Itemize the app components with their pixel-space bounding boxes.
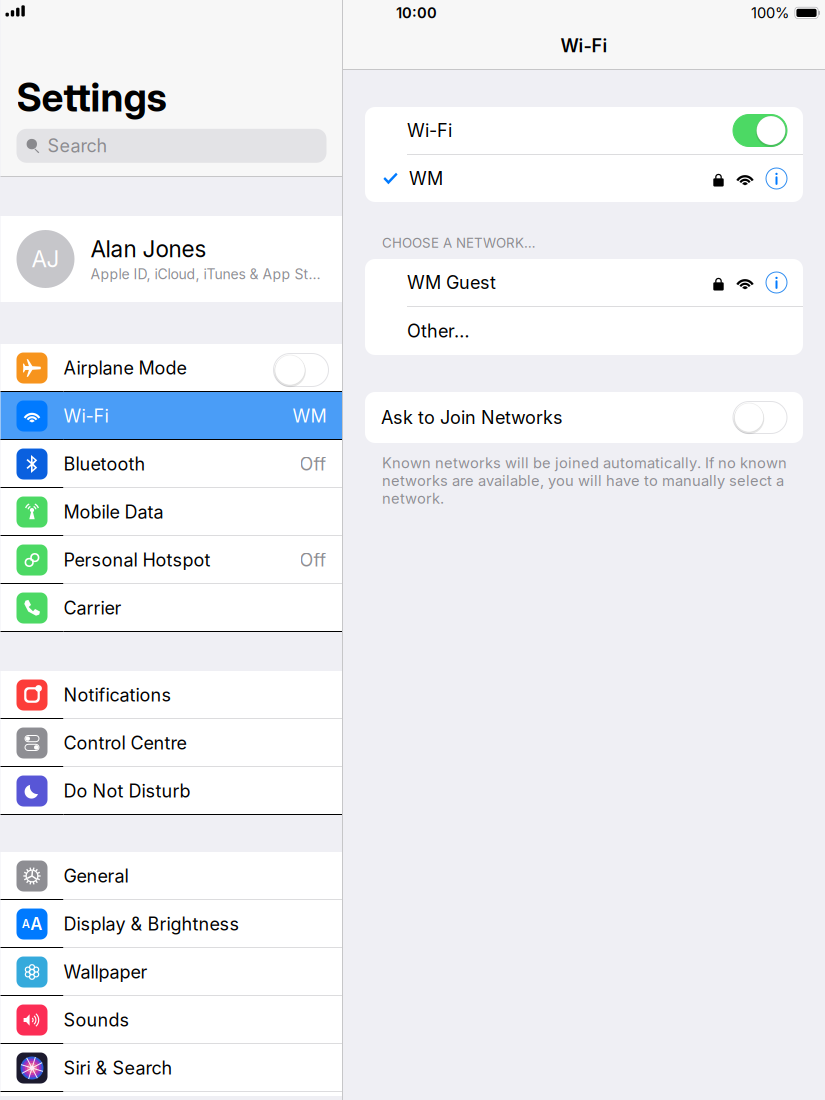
staticText: Alan Jones — [90, 235, 206, 263]
staticText: CHOOSE A NETWORK… — [382, 235, 536, 251]
button[interactable]: Ask to Join Networks — [365, 392, 803, 443]
staticText: Do Not Disturb — [63, 780, 190, 802]
staticText: Personal Hotspot — [63, 549, 210, 571]
button[interactable]: Airplane Mode — [0, 344, 342, 392]
staticText: Bluetooth — [63, 453, 145, 475]
staticText: Off — [299, 453, 326, 475]
button[interactable]: Sounds — [0, 996, 342, 1044]
button[interactable]: Other… — [365, 307, 803, 355]
button[interactable]: Control Centre — [0, 719, 342, 767]
staticText: Sounds — [63, 1009, 129, 1031]
staticText: Ask to Join Networks — [381, 407, 563, 428]
staticText: Display & Brightness — [63, 913, 239, 935]
button[interactable]: Wallpaper — [0, 948, 342, 996]
button[interactable]: Carrier — [0, 584, 342, 632]
staticText: WM Guest — [407, 272, 496, 293]
button[interactable]: Wi-Fi — [365, 107, 803, 154]
button[interactable]: Wi-Fi — [0, 392, 342, 440]
staticText: General — [63, 865, 128, 887]
staticText: Airplane Mode — [63, 357, 186, 379]
staticText: 100% — [751, 4, 789, 22]
staticText: Other… — [407, 320, 470, 342]
button[interactable]: AJ — [0, 216, 342, 302]
button[interactable]: Do Not Disturb — [0, 767, 342, 815]
staticText: Search — [47, 135, 107, 157]
staticText: Control Centre — [63, 732, 186, 754]
button[interactable]: Mobile Data — [0, 488, 342, 536]
staticText: 10:00 — [396, 4, 437, 22]
staticText: Settings — [16, 74, 166, 121]
staticText: Known networks will be joined automatica… — [382, 454, 787, 507]
staticText: Carrier — [63, 597, 121, 619]
staticText: WM — [409, 168, 443, 189]
staticText: WM — [292, 405, 326, 427]
staticText: Wi-Fi — [560, 35, 607, 56]
staticText: Wi-Fi — [63, 405, 108, 427]
button[interactable]: WM Guest — [365, 259, 803, 306]
staticText: Apple ID, iCloud, iTunes & App St… — [90, 266, 320, 283]
staticText: Off — [299, 549, 326, 571]
staticText: AJ — [31, 245, 59, 273]
staticText: Notifications — [63, 684, 171, 706]
button[interactable]: General — [0, 852, 342, 900]
button[interactable]: WM — [365, 155, 803, 202]
staticText: Wallpaper — [63, 961, 147, 983]
staticText: Mobile Data — [63, 501, 163, 523]
staticText: A — [30, 914, 42, 934]
button[interactable]: Bluetooth — [0, 440, 342, 488]
staticText: A — [22, 917, 30, 931]
button[interactable]: A — [0, 900, 342, 948]
button[interactable]: Notifications — [0, 671, 342, 719]
button[interactable]: Personal Hotspot — [0, 536, 342, 584]
staticText: Wi-Fi — [407, 120, 452, 141]
button[interactable]: Siri & Search — [0, 1044, 342, 1092]
staticText: Siri & Search — [63, 1057, 172, 1079]
